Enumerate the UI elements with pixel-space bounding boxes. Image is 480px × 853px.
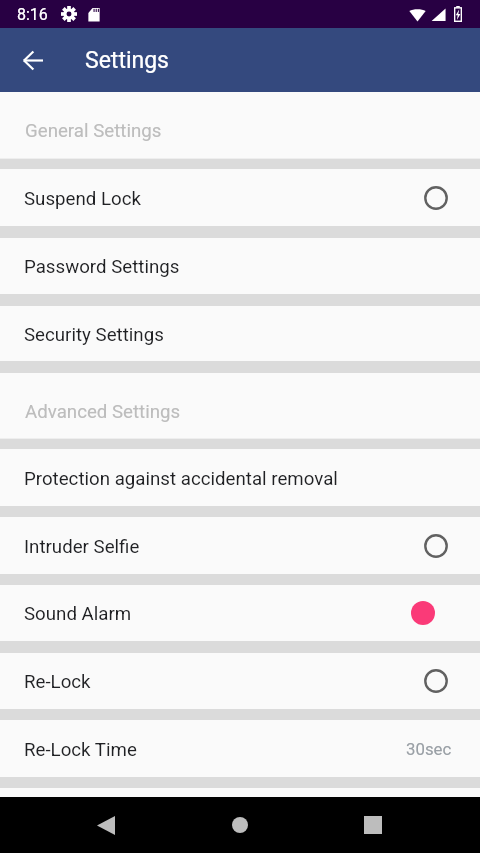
button[interactable]: Password Settings <box>0 238 480 294</box>
staticText: Sound Alarm <box>24 603 132 625</box>
button[interactable]: Protection against accidental removal <box>0 449 480 506</box>
staticText: Re-Lock <box>24 671 91 693</box>
staticText: General Settings <box>25 120 162 142</box>
staticText: Advanced Settings <box>25 401 181 423</box>
staticText: Intruder Selfie <box>24 536 140 558</box>
button[interactable]: Back <box>66 797 146 853</box>
button[interactable]: Re-Lock <box>0 653 480 709</box>
staticText: Protection against accidental removal <box>24 468 338 490</box>
button[interactable]: Home <box>146 797 333 853</box>
staticText: 30sec <box>406 739 452 759</box>
staticText: Security Settings <box>24 324 164 346</box>
staticText: Re-Lock Time <box>24 739 137 761</box>
button[interactable]: Back <box>0 28 64 92</box>
button[interactable]: Recent apps <box>333 797 412 853</box>
staticText: Password Settings <box>24 256 180 278</box>
button[interactable]: Sound Alarm <box>0 585 480 641</box>
button[interactable]: Intruder Selfie <box>0 517 480 574</box>
staticText: Suspend Lock <box>24 188 141 210</box>
button[interactable]: Suspend Lock <box>0 169 480 226</box>
staticText: Settings <box>85 47 169 74</box>
button[interactable]: Security Settings <box>0 306 480 361</box>
staticText: 8:16 <box>17 5 48 24</box>
button[interactable]: Re-Lock Time <box>0 720 480 777</box>
